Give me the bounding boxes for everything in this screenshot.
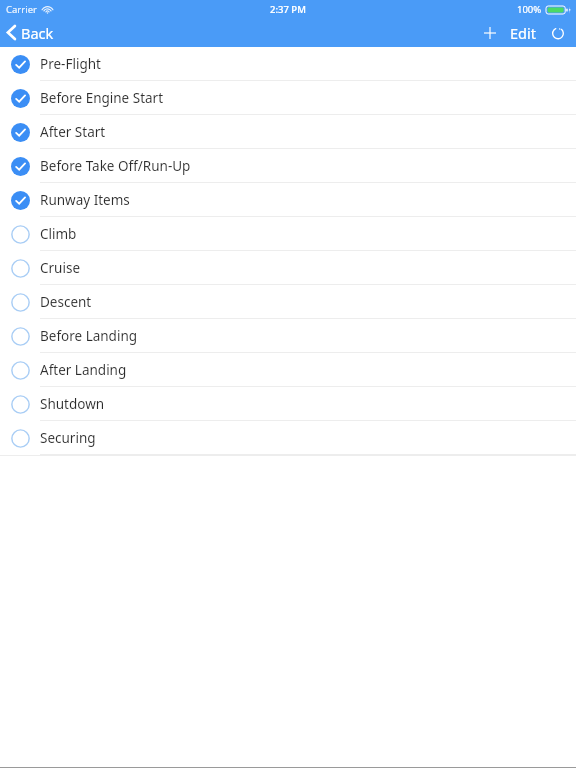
- button[interactable]: Add checklist: [477, 20, 503, 46]
- staticText: Climb: [40, 225, 77, 243]
- staticText: After Start: [40, 123, 106, 141]
- button[interactable]: Reset checklist: [546, 21, 570, 45]
- staticText: Securing: [40, 429, 96, 447]
- staticText: After Landing: [40, 361, 127, 379]
- staticText: Pre-Flight: [40, 55, 101, 73]
- button[interactable]: Back: [0, 18, 64, 47]
- button[interactable]: After Landing: [0, 353, 576, 387]
- button[interactable]: Descent: [0, 285, 576, 319]
- staticText: 100%: [517, 3, 542, 16]
- staticText: Before Engine Start: [40, 89, 164, 107]
- button[interactable]: Runway Items: [0, 183, 576, 217]
- staticText: Back: [21, 23, 54, 43]
- button[interactable]: After Start: [0, 115, 576, 149]
- button[interactable]: Cruise: [0, 251, 576, 285]
- staticText: Carrier: [6, 3, 37, 16]
- staticText: Before Take Off/Run-Up: [40, 157, 191, 175]
- staticText: Cruise: [40, 259, 81, 277]
- staticText: Edit: [510, 23, 536, 42]
- button[interactable]: Before Take Off/Run-Up: [0, 149, 576, 183]
- button[interactable]: Securing: [0, 421, 576, 455]
- staticText: Before Landing: [40, 327, 138, 345]
- staticText: Shutdown: [40, 395, 105, 413]
- button[interactable]: Before Landing: [0, 319, 576, 353]
- button[interactable]: Pre-Flight: [0, 47, 576, 81]
- staticText: Runway Items: [40, 191, 130, 209]
- staticText: 2:37 PM: [270, 3, 306, 16]
- staticText: Descent: [40, 293, 92, 311]
- button[interactable]: Before Engine Start: [0, 81, 576, 115]
- button[interactable]: Edit: [507, 18, 539, 47]
- button[interactable]: Climb: [0, 217, 576, 251]
- button[interactable]: Shutdown: [0, 387, 576, 421]
